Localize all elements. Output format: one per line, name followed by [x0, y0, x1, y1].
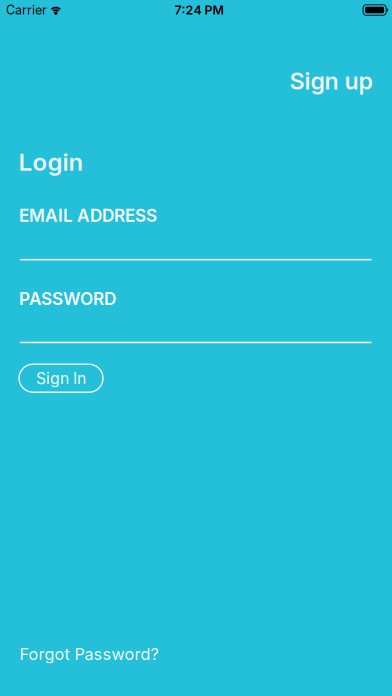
- staticText: EMAIL ADDRESS: [19, 205, 157, 226]
- staticText: 7:24 PM: [174, 2, 223, 17]
- button[interactable]: Sign up: [289, 67, 372, 95]
- button[interactable]: Sign In: [19, 364, 103, 392]
- staticText: Login: [18, 147, 83, 177]
- staticText: Sign In: [36, 369, 86, 388]
- staticText: PASSWORD: [19, 288, 116, 309]
- staticText: Sign up: [289, 67, 372, 95]
- staticText: Carrier: [6, 2, 47, 18]
- staticText: Forgot Password?: [19, 644, 158, 664]
- button[interactable]: Forgot Password?: [19, 644, 158, 664]
